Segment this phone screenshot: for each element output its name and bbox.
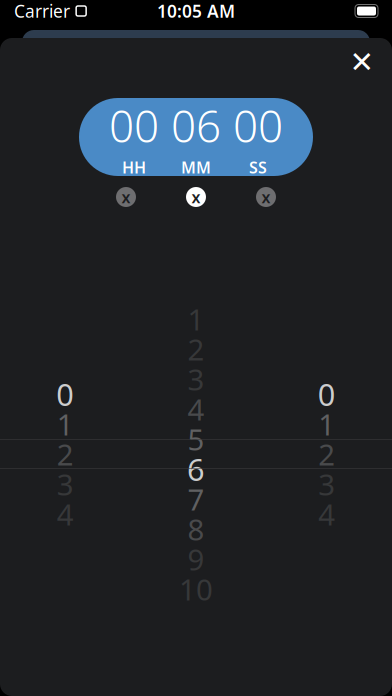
staticText: ✕ [349,45,374,79]
button[interactable]: Close [340,40,384,84]
staticText: 4 [318,494,335,533]
button[interactable]: Clear field [251,182,281,212]
staticText: 00 [233,96,283,155]
staticText: x [191,186,200,208]
staticText: 5 [187,419,204,458]
staticText: 10 [179,569,213,608]
button[interactable]: Clear minutes [181,182,211,212]
staticText: 8 [187,509,204,548]
staticText: 1 [57,404,74,443]
staticText: x [261,186,270,208]
staticText: 06 [171,96,221,155]
staticText: 2 [318,434,335,473]
staticText: 1 [318,404,335,443]
staticText: 4 [187,389,204,428]
staticText: Carrier [14,0,70,22]
staticText: 3 [318,464,335,503]
staticText: 00 [109,96,159,155]
staticText: 3 [57,464,74,503]
staticText: x [121,186,130,208]
staticText: 3 [187,359,204,398]
staticText: 6 [187,449,205,489]
staticText: 2 [57,434,74,473]
staticText: 0 [56,374,74,414]
staticText: SS [249,157,267,178]
staticText: 2 [187,329,204,368]
button[interactable]: Clear field [111,182,141,212]
staticText: 1 [187,299,204,338]
staticText: 9 [187,539,204,578]
staticText: 0 [318,374,336,414]
staticText: 10:05 AM [157,0,235,22]
staticText: MM [181,157,211,178]
staticText: 4 [57,494,74,533]
staticText: HH [122,157,146,178]
staticText: 7 [187,479,204,518]
